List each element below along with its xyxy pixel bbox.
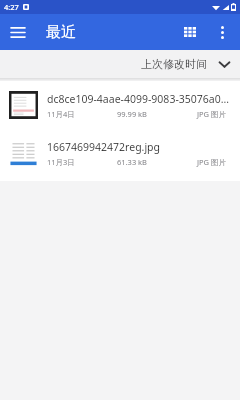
staticText: 99.99 kB: [117, 109, 147, 119]
staticText: 1667469942472reg.jpg: [47, 140, 161, 154]
staticText: 4:27: [4, 2, 19, 12]
button[interactable]: 上次修改时间: [131, 53, 240, 75]
staticText: 61.33 kB: [117, 157, 147, 167]
button[interactable]: Grid view: [173, 15, 207, 49]
staticText: 上次修改时间: [141, 57, 207, 71]
button[interactable]: dc8ce109-4aae-4099-9083-35076a0…: [0, 81, 240, 129]
button[interactable]: Open navigation drawer: [0, 14, 36, 50]
button[interactable]: More options: [207, 17, 237, 47]
staticText: JPG 图片: [197, 109, 226, 119]
staticText: JPG 图片: [197, 157, 226, 167]
staticText: 11月4日: [47, 109, 75, 119]
staticText: 11月3日: [47, 157, 75, 167]
button[interactable]: 1667469942472reg.jpg: [0, 129, 240, 177]
staticText: dc8ce109-4aae-4099-9083-35076a0…: [47, 92, 229, 106]
staticText: 最近: [46, 23, 76, 42]
